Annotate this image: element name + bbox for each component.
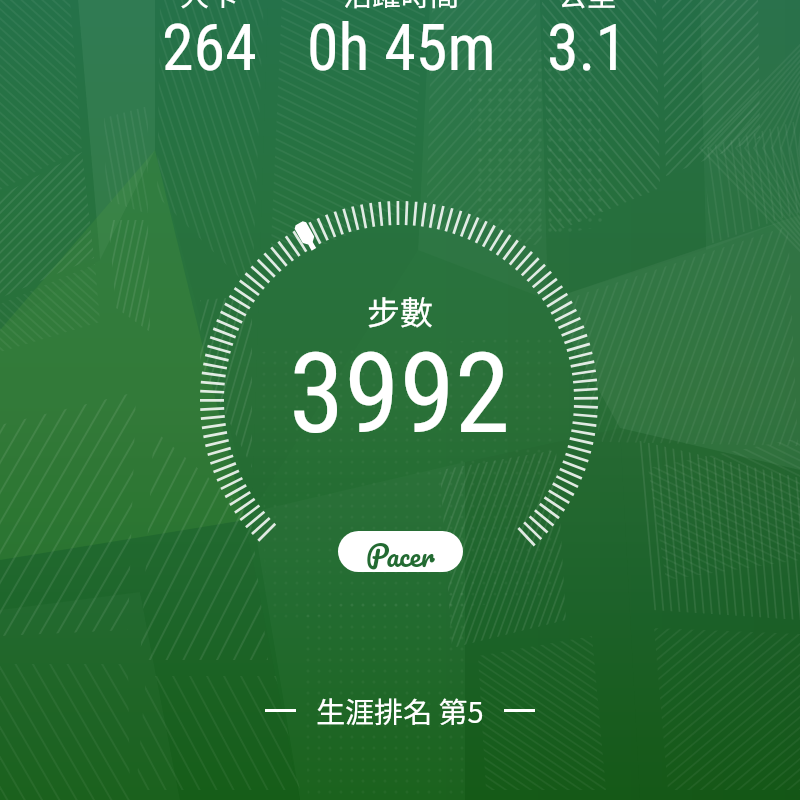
button[interactable]: 步數 (250, 276, 550, 466)
staticText: 生涯排名 第5 (316, 689, 484, 731)
button[interactable]: 大卡 (99, 0, 319, 14)
button[interactable]: 生涯排名 第5 (265, 689, 535, 731)
staticText: 3.1 (547, 11, 628, 86)
button[interactable]: 264 (99, 11, 319, 86)
button[interactable]: 活躍時間 (291, 0, 511, 14)
button[interactable]: Pacer logo (338, 531, 463, 572)
button[interactable]: 公里 (477, 0, 697, 14)
staticText: 活躍時間 (343, 0, 460, 14)
staticText: 公里 (558, 0, 617, 14)
button[interactable]: 3.1 (477, 11, 697, 86)
staticText: 步數 (367, 287, 433, 335)
staticText: 3992 (289, 328, 511, 459)
staticText: Pacer (366, 531, 435, 572)
staticText: 大卡 (180, 0, 239, 14)
staticText: 0h 45m (307, 11, 496, 86)
staticText: 264 (162, 11, 257, 86)
button[interactable]: 0h 45m (291, 11, 511, 86)
